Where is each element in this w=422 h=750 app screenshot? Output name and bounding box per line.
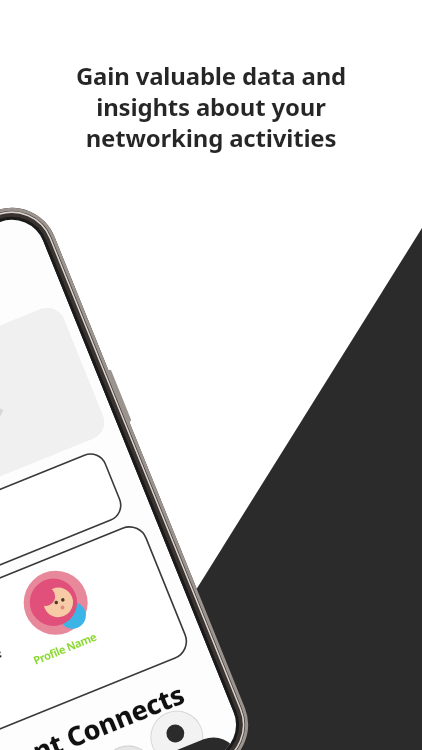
- button[interactable]: Gain valuable data and insights about yo…: [0, 0, 422, 750]
